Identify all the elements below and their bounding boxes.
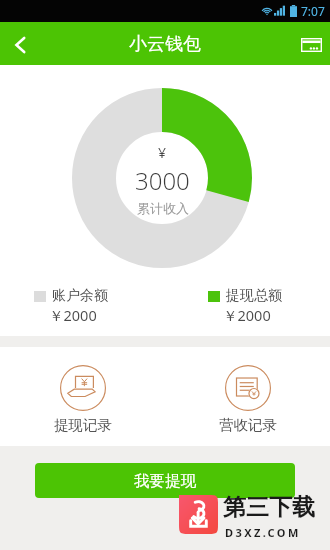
- staticText: ¥: [158, 143, 167, 162]
- staticText: D3XZ.COM: [225, 525, 301, 540]
- staticText: 3000: [135, 164, 190, 197]
- button[interactable]: 提现记录: [36, 363, 130, 436]
- staticText: 营收记录: [219, 416, 277, 434]
- staticText: 累计收入: [137, 200, 189, 216]
- button[interactable]: Back: [0, 22, 40, 65]
- staticText: ￥2000: [49, 305, 97, 325]
- staticText: 提现记录: [54, 416, 112, 434]
- staticText: 提现总额: [226, 287, 282, 305]
- staticText: 7:07: [301, 3, 325, 19]
- staticText: 我要提现: [134, 471, 196, 491]
- staticText: 小云钱包: [129, 33, 201, 56]
- button[interactable]: 营收记录: [201, 363, 295, 436]
- button[interactable]: 我要提现: [35, 463, 295, 498]
- staticText: 账户余额: [52, 287, 108, 305]
- staticText: 第三下载: [223, 493, 315, 522]
- button[interactable]: Bank card: [292, 22, 330, 65]
- staticText: ￥2000: [223, 305, 271, 325]
